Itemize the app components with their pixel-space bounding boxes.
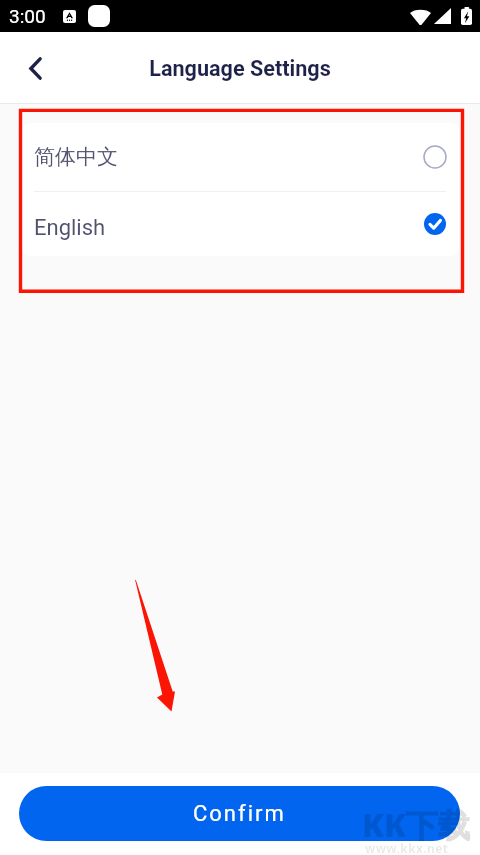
staticText: www.kkx.net	[365, 840, 449, 855]
staticText: English	[34, 215, 106, 241]
button[interactable]: Back	[16, 49, 54, 87]
staticText: Confirm	[193, 801, 286, 827]
button[interactable]: Confirm	[19, 786, 460, 841]
staticText: 3:00	[9, 5, 46, 27]
button[interactable]: 简体中文	[22, 123, 459, 191]
staticText: 简体中文	[34, 144, 118, 170]
staticText: Language Settings	[149, 56, 331, 81]
button[interactable]: English	[22, 192, 459, 256]
staticText: KK下载	[362, 803, 470, 847]
